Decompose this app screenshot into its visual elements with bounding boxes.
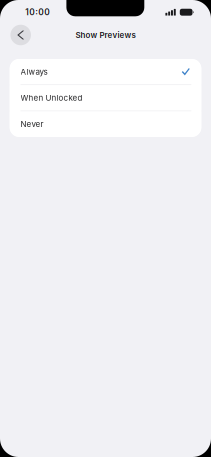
staticText: Never bbox=[20, 119, 43, 129]
staticText: Show Previews bbox=[75, 30, 135, 40]
button[interactable]: When Unlocked bbox=[10, 85, 201, 111]
button[interactable]: Back bbox=[10, 25, 31, 45]
button[interactable]: Always bbox=[10, 59, 201, 84]
staticText: Always bbox=[20, 67, 47, 77]
staticText: When Unlocked bbox=[20, 93, 82, 103]
button[interactable]: Never bbox=[10, 111, 201, 137]
staticText: 10:00 bbox=[25, 7, 50, 17]
